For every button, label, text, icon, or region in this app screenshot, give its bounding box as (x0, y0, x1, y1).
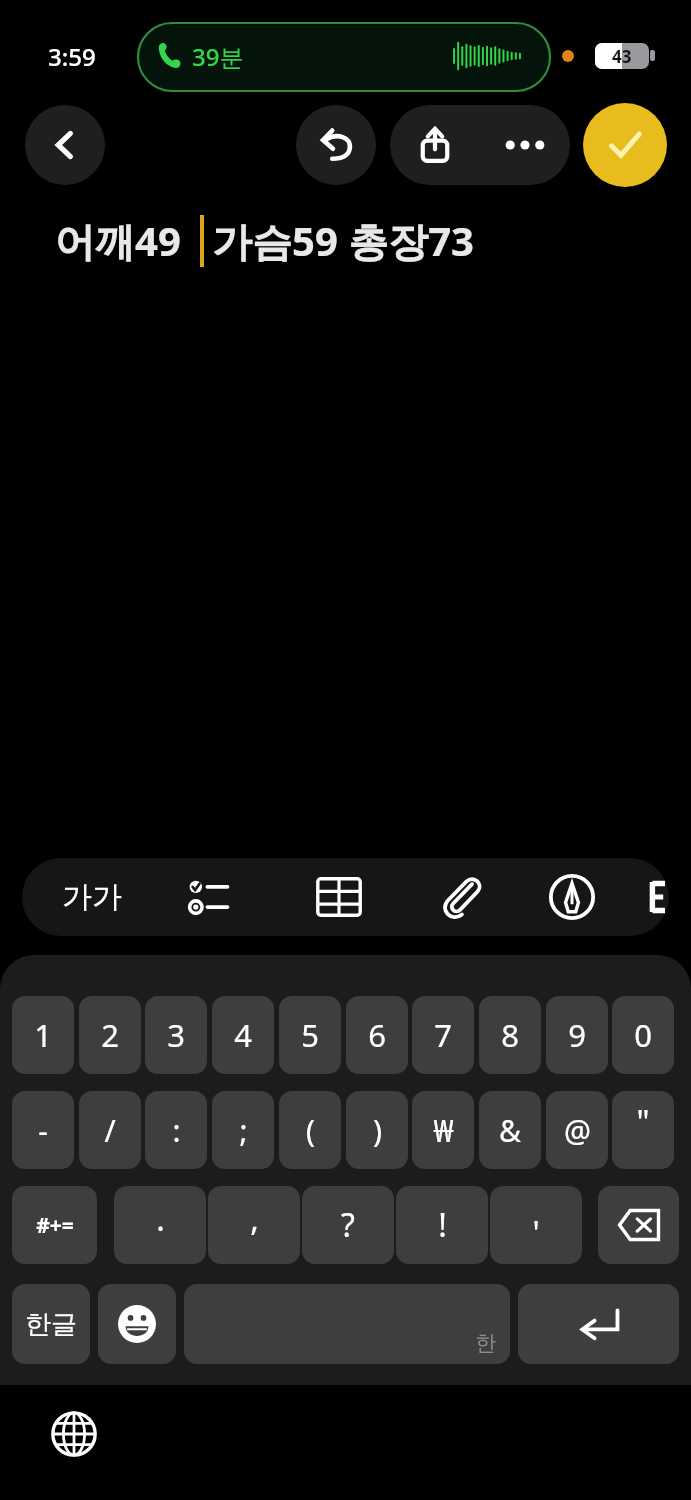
button[interactable]: 7 (412, 996, 474, 1074)
staticText: 3 (167, 1014, 185, 1056)
staticText: & (499, 1110, 521, 1151)
staticText: 0 (634, 1014, 652, 1056)
button[interactable]: Done (583, 103, 667, 187)
staticText: 5 (301, 1014, 319, 1056)
button[interactable]: Attach file (408, 858, 514, 936)
staticText: 1 (34, 1014, 52, 1056)
button[interactable]: Enter (518, 1284, 679, 1364)
button[interactable]: 6 (346, 996, 408, 1074)
button[interactable]: ( (279, 1091, 341, 1169)
staticText: #+= (36, 1211, 74, 1240)
button[interactable]: Insert table (284, 858, 394, 936)
staticText: ' (532, 1211, 540, 1255)
staticText: 한글 (25, 1308, 77, 1341)
staticText: 7 (434, 1014, 452, 1056)
staticText: ? (341, 1203, 355, 1247)
staticText: , (250, 1197, 259, 1241)
button[interactable]: ₩ (412, 1091, 474, 1169)
button[interactable]: ' (490, 1186, 582, 1264)
button[interactable]: 3 (145, 996, 207, 1074)
staticText: 39분 (192, 40, 244, 73)
button[interactable]: & (479, 1091, 541, 1169)
staticText: 8 (501, 1014, 519, 1056)
button[interactable]: / (79, 1091, 141, 1169)
staticText: ₩ (433, 1110, 454, 1151)
button[interactable]: , (208, 1186, 300, 1264)
button[interactable]: 가가 (36, 858, 148, 936)
button[interactable]: 5 (279, 996, 341, 1074)
button[interactable]: ? (302, 1186, 394, 1264)
staticText: ; (239, 1110, 248, 1151)
button[interactable]: More tools (642, 858, 669, 936)
staticText: 43 (612, 45, 632, 68)
button[interactable]: More options (480, 105, 570, 185)
button[interactable]: 0 (612, 996, 674, 1074)
button[interactable]: Backspace (598, 1186, 679, 1264)
staticText: 어깨49 (55, 213, 181, 268)
button[interactable]: " (612, 1091, 674, 1169)
button[interactable]: Draw (522, 858, 622, 936)
button[interactable]: 1 (12, 996, 74, 1074)
button[interactable]: Emoji (98, 1284, 176, 1364)
staticText: 2 (101, 1014, 119, 1056)
button[interactable]: Undo (296, 105, 376, 185)
button[interactable]: . (114, 1186, 206, 1264)
staticText: @ (564, 1110, 591, 1151)
button[interactable]: ! (396, 1186, 488, 1264)
staticText: 가가 (62, 878, 122, 916)
button[interactable]: - (12, 1091, 74, 1169)
button[interactable]: ; (212, 1091, 274, 1169)
staticText: . (156, 1197, 165, 1241)
staticText: 3:59 (48, 40, 96, 73)
staticText: ( (306, 1110, 315, 1151)
button[interactable]: 한글 (12, 1284, 90, 1364)
staticText: 4 (234, 1014, 252, 1056)
button[interactable]: Back (25, 105, 105, 185)
staticText: - (38, 1110, 48, 1151)
button[interactable]: 8 (479, 996, 541, 1074)
staticText: : (172, 1110, 181, 1151)
staticText: 6 (368, 1014, 386, 1056)
staticText: " (636, 1100, 650, 1144)
button[interactable]: 9 (546, 996, 608, 1074)
button[interactable]: Change language (40, 1400, 108, 1468)
button[interactable]: 2 (79, 996, 141, 1074)
staticText: 가슴59 총장73 (212, 213, 474, 268)
button[interactable]: Checklist (156, 858, 266, 936)
button[interactable]: ) (346, 1091, 408, 1169)
button[interactable]: Share (390, 105, 480, 185)
button[interactable]: #+= (12, 1186, 97, 1264)
staticText: ! (438, 1203, 447, 1247)
staticText: / (104, 1110, 116, 1151)
button[interactable]: 4 (212, 996, 274, 1074)
button[interactable]: @ (546, 1091, 608, 1169)
button[interactable]: : (145, 1091, 207, 1169)
staticText: 한 (475, 1330, 496, 1356)
staticText: ) (373, 1110, 382, 1151)
button[interactable]: Space (184, 1284, 510, 1364)
staticText: 9 (568, 1014, 586, 1056)
